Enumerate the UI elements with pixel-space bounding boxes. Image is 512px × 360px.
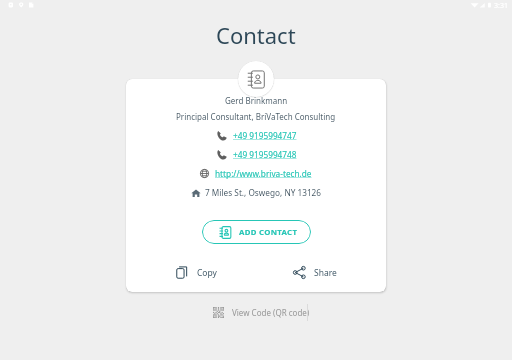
- button[interactable]: ADD CONTACT: [202, 220, 311, 244]
- button[interactable]: Copy: [170, 260, 223, 285]
- staticText: Principal Consultant, BriVaTech Consulti…: [176, 111, 336, 122]
- button[interactable]: +49 9195994747: [211, 126, 302, 145]
- staticText: Gerd Brinkmann: [225, 95, 288, 106]
- staticText: ADD CONTACT: [239, 227, 297, 238]
- staticText: View Code (QR code): [232, 307, 310, 318]
- button[interactable]: 7 Miles St., Oswego, NY 13126: [186, 183, 327, 202]
- staticText: +49 9195994748: [233, 149, 297, 160]
- button[interactable]: +49 9195994748: [211, 145, 302, 164]
- button[interactable]: View Code (QR code): [207, 302, 316, 323]
- staticText: Contact: [216, 20, 296, 50]
- staticText: Copy: [197, 267, 217, 279]
- staticText: 7 Miles St., Oswego, NY 13126: [205, 187, 322, 198]
- staticText: http://www.briva-tech.de: [215, 168, 312, 179]
- button[interactable]: Share: [287, 260, 343, 285]
- staticText: +49 9195994747: [233, 130, 297, 141]
- staticText: Share: [314, 267, 337, 279]
- staticText: 3:31: [494, 1, 508, 11]
- button[interactable]: http://www.briva-tech.de: [195, 164, 317, 183]
